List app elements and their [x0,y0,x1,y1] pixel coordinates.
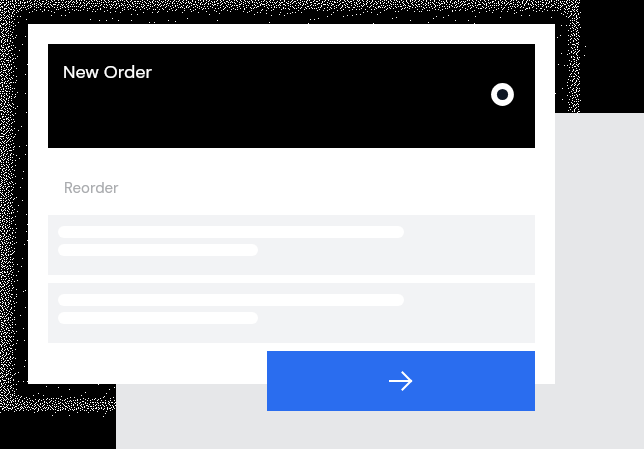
staticText: New Order [63,60,153,83]
button[interactable]: Continue [267,351,535,411]
button[interactable]: Account [490,82,515,107]
button[interactable] [48,215,535,275]
staticText: Reorder [64,178,119,198]
button[interactable] [48,283,535,343]
